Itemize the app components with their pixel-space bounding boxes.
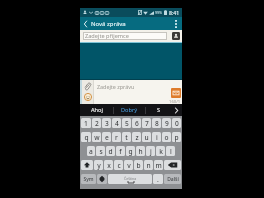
button[interactable]: j bbox=[146, 146, 155, 156]
button[interactable]: i bbox=[152, 132, 161, 142]
staticText: Sym bbox=[83, 176, 94, 183]
staticText: u bbox=[144, 133, 149, 142]
button[interactable]: a bbox=[87, 146, 95, 156]
staticText: Ahoj bbox=[91, 106, 103, 114]
staticText: Další bbox=[167, 176, 179, 183]
staticText: d bbox=[108, 147, 113, 156]
staticText: e bbox=[105, 133, 109, 142]
button[interactable]: n bbox=[144, 160, 153, 170]
button[interactable]: . bbox=[153, 174, 163, 184]
staticText: 4 bbox=[115, 119, 119, 128]
staticText: 6 bbox=[135, 119, 139, 128]
staticText: 160/1 bbox=[169, 99, 181, 105]
button[interactable]: u bbox=[142, 132, 151, 142]
button[interactable]: Pick contact bbox=[172, 32, 180, 40]
button[interactable]: d bbox=[106, 146, 115, 156]
staticText: w bbox=[94, 133, 100, 142]
button[interactable]: v bbox=[124, 160, 133, 170]
staticText: . bbox=[157, 175, 159, 184]
staticText: S bbox=[157, 106, 161, 114]
button[interactable]: Send bbox=[171, 88, 181, 98]
button[interactable]: Dobrý bbox=[114, 104, 145, 116]
staticText: 2 bbox=[95, 119, 99, 128]
staticText: Dobrý bbox=[121, 106, 138, 114]
staticText: m bbox=[155, 161, 162, 170]
button[interactable]: g bbox=[126, 146, 135, 156]
button[interactable]: Zadejte příjemce bbox=[83, 32, 167, 40]
button[interactable]: 0 bbox=[172, 118, 181, 128]
button[interactable]: 3 bbox=[102, 118, 111, 128]
button[interactable]: 1 bbox=[81, 118, 91, 128]
button[interactable]: k bbox=[156, 146, 165, 156]
staticText: 7 bbox=[145, 119, 149, 128]
button[interactable]: b bbox=[134, 160, 143, 170]
button[interactable]: 9 bbox=[162, 118, 171, 128]
staticText: n bbox=[146, 161, 151, 170]
staticText: j bbox=[150, 147, 152, 156]
button[interactable]: Sym bbox=[81, 174, 96, 184]
button[interactable]: w bbox=[92, 132, 101, 142]
staticText: 0 bbox=[175, 119, 179, 128]
button[interactable]: 2 bbox=[92, 118, 101, 128]
button[interactable]: p bbox=[172, 132, 181, 142]
button[interactable]: Settings bbox=[97, 174, 107, 184]
button[interactable]: Další bbox=[164, 174, 181, 184]
staticText: Čeština bbox=[124, 176, 137, 181]
staticText: y bbox=[97, 161, 101, 170]
button[interactable]: f bbox=[116, 146, 125, 156]
button[interactable]: S bbox=[146, 104, 171, 116]
button[interactable]: 6 bbox=[132, 118, 141, 128]
button[interactable]: c bbox=[114, 160, 123, 170]
button[interactable]: Backspace bbox=[164, 160, 181, 170]
staticText: 5 bbox=[125, 119, 129, 128]
staticText: v bbox=[127, 161, 131, 170]
staticText: 8 bbox=[155, 119, 159, 128]
staticText: r bbox=[115, 133, 118, 142]
staticText: Zadejte příjemce bbox=[85, 32, 129, 40]
staticText: p bbox=[174, 133, 179, 142]
staticText: o bbox=[164, 133, 169, 142]
staticText: a bbox=[89, 147, 93, 156]
button[interactable]: 7 bbox=[142, 118, 151, 128]
staticText: h bbox=[138, 147, 143, 156]
button[interactable]: m bbox=[154, 160, 163, 170]
button[interactable]: 4 bbox=[112, 118, 121, 128]
staticText: i bbox=[156, 133, 158, 142]
staticText: q bbox=[84, 133, 89, 142]
staticText: g bbox=[128, 147, 133, 156]
button[interactable]: 8 bbox=[152, 118, 161, 128]
button[interactable]: Emoji bbox=[83, 92, 93, 102]
button[interactable]: Attach bbox=[83, 82, 92, 91]
staticText: b bbox=[136, 161, 141, 170]
button[interactable]: t bbox=[122, 132, 131, 142]
button[interactable]: Zadejte zprávu bbox=[94, 80, 182, 104]
staticText: 8:41 bbox=[169, 9, 180, 16]
button[interactable]: s bbox=[96, 146, 105, 156]
button[interactable]: e bbox=[102, 132, 111, 142]
button[interactable]: More suggestions bbox=[171, 104, 182, 116]
button[interactable]: z bbox=[132, 132, 141, 142]
button[interactable]: Space bbox=[108, 174, 152, 184]
button[interactable]: r bbox=[112, 132, 121, 142]
staticText: 3 bbox=[105, 119, 109, 128]
button[interactable]: q bbox=[81, 132, 91, 142]
staticText: 99% bbox=[155, 10, 163, 15]
button[interactable]: o bbox=[162, 132, 171, 142]
staticText: t bbox=[125, 133, 128, 142]
button[interactable]: 5 bbox=[122, 118, 131, 128]
staticText: s bbox=[99, 147, 103, 156]
button[interactable]: l bbox=[166, 146, 175, 156]
staticText: Zadejte zprávu bbox=[97, 83, 135, 90]
staticText: k bbox=[159, 147, 163, 156]
button[interactable]: Ahoj bbox=[80, 104, 113, 116]
button[interactable]: More options bbox=[169, 17, 182, 30]
staticText: l bbox=[170, 147, 172, 156]
button[interactable]: Back bbox=[80, 17, 91, 30]
staticText: Nová zpráva bbox=[91, 20, 126, 28]
button[interactable]: y bbox=[94, 160, 103, 170]
staticText: c bbox=[117, 161, 121, 170]
staticText: 9 bbox=[165, 119, 169, 128]
button[interactable]: h bbox=[136, 146, 145, 156]
button[interactable]: Shift bbox=[81, 160, 93, 170]
button[interactable]: x bbox=[104, 160, 113, 170]
